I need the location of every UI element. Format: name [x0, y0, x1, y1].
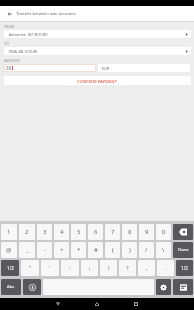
button[interactable]: EUR: [98, 64, 190, 72]
button[interactable]: Home: [88, 298, 106, 310]
button[interactable]: 7: [105, 224, 120, 240]
button[interactable]: 0: [156, 224, 171, 240]
button[interactable]: 6: [88, 224, 103, 240]
button[interactable]: 5: [71, 224, 86, 240]
staticText: 7: [111, 228, 115, 236]
button[interactable]: 1/2: [176, 260, 193, 276]
staticText: 30: [6, 65, 12, 71]
button[interactable]: ': [41, 260, 59, 276]
button[interactable]: _: [19, 242, 35, 258]
staticText: *: [77, 246, 81, 254]
button[interactable]: ?: [119, 260, 136, 276]
button[interactable]: .: [157, 260, 174, 276]
button[interactable]: ;: [81, 260, 98, 276]
staticText: 8: [128, 228, 132, 236]
button[interactable]: Hide keyboard: [173, 279, 193, 295]
staticText: 1/2: [181, 265, 188, 271]
staticText: @: [6, 246, 12, 254]
staticText: FROM: [4, 24, 15, 29]
button[interactable]: 9: [139, 224, 154, 240]
button[interactable]: VISA (48.10 EUR): [4, 47, 191, 55]
staticText: EUR: [102, 66, 110, 71]
button[interactable]: 8: [122, 224, 137, 240]
staticText: 6: [94, 228, 98, 236]
staticText: ?: [126, 264, 129, 272]
button[interactable]: Done: [173, 242, 193, 258]
button[interactable]: Back: [2, 6, 17, 21]
staticText: ,: [146, 264, 148, 272]
staticText: 0: [162, 228, 166, 236]
staticText: Done: [178, 247, 189, 253]
button[interactable]: CONFIRM PAYMENT: [4, 76, 191, 85]
staticText: ': [49, 264, 51, 272]
staticText: 9: [145, 228, 149, 236]
staticText: #: [94, 246, 98, 254]
staticText: ": [29, 264, 32, 272]
button[interactable]: ,: [138, 260, 155, 276]
staticText: 2: [25, 228, 29, 236]
button[interactable]: Voice input: [23, 279, 41, 295]
staticText: 1: [7, 228, 11, 236]
staticText: Aomerine (87.90 EUR): [9, 32, 48, 37]
button[interactable]: Back: [49, 298, 67, 310]
button[interactable]: 1: [1, 224, 17, 240]
staticText: 1/2: [7, 265, 14, 271]
staticText: .: [165, 264, 167, 272]
staticText: TO: [4, 41, 9, 46]
button[interactable]: 2: [19, 224, 35, 240]
button[interactable]: (: [105, 242, 120, 258]
staticText: ;: [89, 264, 91, 272]
staticText: _: [26, 246, 29, 254]
button[interactable]: ): [122, 242, 137, 258]
button[interactable]: \: [156, 242, 171, 258]
staticText: +: [60, 246, 64, 254]
staticText: :: [69, 264, 71, 272]
staticText: -: [44, 246, 46, 254]
staticText: VISA (48.10 EUR): [9, 49, 38, 54]
button[interactable]: *: [71, 242, 86, 258]
button[interactable]: :: [61, 260, 79, 276]
button[interactable]: 3: [37, 224, 52, 240]
button[interactable]: !: [100, 260, 117, 276]
staticText: 4: [60, 228, 64, 236]
staticText: (: [112, 246, 114, 254]
button[interactable]: Abc: [1, 279, 21, 295]
staticText: Abc: [7, 284, 15, 290]
button[interactable]: /: [139, 242, 154, 258]
staticText: 3: [43, 228, 47, 236]
staticText: /: [145, 246, 148, 254]
button[interactable]: Recent apps: [127, 298, 145, 310]
button[interactable]: 30: [5, 65, 95, 71]
button[interactable]: 1/2: [1, 260, 19, 276]
staticText: 5: [77, 228, 81, 236]
staticText: AMOUNT: [4, 58, 21, 63]
staticText: ): [129, 246, 131, 254]
staticText: \: [162, 246, 165, 254]
staticText: !: [108, 264, 110, 272]
button[interactable]: Backspace: [173, 224, 193, 240]
button[interactable]: ": [21, 260, 39, 276]
staticText: Transfer between own accounts: [16, 11, 76, 16]
button[interactable]: -: [37, 242, 52, 258]
button[interactable]: +: [54, 242, 69, 258]
staticText: CONFIRM PAYMENT: [77, 78, 118, 84]
button[interactable]: Aomerine (87.90 EUR): [4, 30, 191, 38]
button[interactable]: Settings: [156, 279, 171, 295]
button[interactable]: #: [88, 242, 103, 258]
button[interactable]: @: [1, 242, 17, 258]
button[interactable]: 4: [54, 224, 69, 240]
